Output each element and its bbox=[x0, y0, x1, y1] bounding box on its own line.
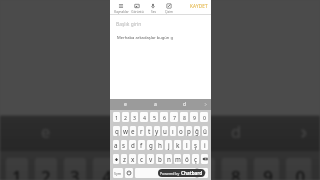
staticText: 7 bbox=[199, 164, 209, 180]
button[interactable]: e bbox=[130, 126, 136, 136]
button[interactable]: Shift bbox=[113, 154, 119, 164]
button[interactable]: ü bbox=[202, 126, 208, 136]
button[interactable]: o bbox=[178, 126, 184, 136]
button[interactable]: a bbox=[113, 140, 119, 150]
button[interactable]: Çizim bbox=[161, 0, 177, 15]
button[interactable]: q bbox=[113, 126, 120, 136]
button[interactable]: 7 bbox=[170, 112, 178, 122]
button[interactable]: s bbox=[121, 140, 127, 150]
button[interactable]: e bbox=[0, 116, 93, 151]
staticText: 5 bbox=[153, 114, 156, 121]
button[interactable]: ç bbox=[192, 154, 199, 164]
button[interactable]: 1 bbox=[6, 158, 28, 180]
button[interactable]: f bbox=[138, 140, 145, 150]
button[interactable]: Sym bbox=[113, 168, 123, 178]
button[interactable]: p bbox=[186, 126, 192, 136]
staticText: 6 bbox=[167, 164, 176, 180]
button[interactable]: 2 bbox=[35, 158, 57, 180]
button[interactable]: m bbox=[174, 154, 181, 164]
button[interactable]: 8 bbox=[221, 158, 247, 180]
button[interactable]: 8 bbox=[180, 112, 188, 122]
button[interactable]: y bbox=[154, 126, 160, 136]
staticText: d bbox=[183, 101, 187, 108]
button[interactable]: Enter bbox=[198, 168, 208, 178]
staticText: 1 bbox=[12, 164, 22, 180]
button[interactable]: 1 bbox=[113, 112, 120, 122]
button[interactable]: More suggestions bbox=[286, 116, 320, 151]
button[interactable]: d bbox=[170, 99, 200, 110]
staticText: e bbox=[124, 101, 127, 108]
staticText: b bbox=[158, 155, 162, 163]
button[interactable]: 0 bbox=[200, 112, 208, 122]
button[interactable]: h bbox=[156, 140, 163, 150]
button[interactable]: j bbox=[165, 140, 172, 150]
staticText: 7 bbox=[173, 114, 176, 121]
button[interactable]: Kaynaklar bbox=[113, 0, 129, 15]
button[interactable]: i bbox=[201, 140, 208, 150]
button[interactable]: 5 bbox=[125, 158, 151, 180]
staticText: t bbox=[148, 127, 151, 135]
staticText: h bbox=[158, 141, 162, 149]
button[interactable]: a bbox=[93, 116, 189, 151]
button[interactable]: 0 bbox=[286, 158, 312, 180]
button[interactable]: r bbox=[138, 126, 144, 136]
button[interactable]: u bbox=[162, 126, 168, 136]
button[interactable]: v bbox=[147, 154, 154, 164]
button[interactable]: 9 bbox=[254, 158, 279, 180]
button[interactable]: ö bbox=[183, 154, 190, 164]
staticText: u bbox=[163, 127, 167, 135]
staticText: v bbox=[149, 155, 153, 163]
button[interactable]: 4 bbox=[140, 112, 148, 122]
button[interactable]: Ses bbox=[145, 0, 161, 15]
button[interactable]: c bbox=[138, 154, 145, 164]
button[interactable]: Emoji bbox=[125, 168, 133, 178]
staticText: x bbox=[131, 155, 135, 163]
staticText: a bbox=[114, 141, 118, 149]
staticText: Chatbard bbox=[181, 170, 203, 176]
button[interactable]: More suggestions bbox=[200, 99, 211, 110]
button[interactable]: KAYDET bbox=[184, 0, 211, 12]
button[interactable]: n bbox=[165, 154, 172, 164]
button[interactable]: Backspace bbox=[201, 154, 208, 164]
button[interactable]: ı bbox=[170, 126, 176, 136]
button[interactable]: 2 bbox=[122, 112, 129, 122]
staticText: a bbox=[138, 122, 147, 145]
button[interactable]: Görüntü bbox=[129, 0, 145, 15]
button[interactable]: a bbox=[140, 99, 170, 110]
button[interactable]: 7 bbox=[189, 158, 215, 180]
staticText: Çizim bbox=[165, 10, 173, 14]
button[interactable]: 3 bbox=[131, 112, 138, 122]
staticText: 2 bbox=[124, 114, 127, 121]
button[interactable]: 3 bbox=[64, 158, 86, 180]
button[interactable]: l bbox=[183, 140, 190, 150]
button[interactable]: d bbox=[129, 140, 136, 150]
button[interactable]: t bbox=[146, 126, 152, 136]
staticText: Sym bbox=[114, 171, 122, 176]
button[interactable]: 6 bbox=[157, 158, 183, 180]
staticText: 6 bbox=[163, 114, 166, 121]
button[interactable]: 6 bbox=[160, 112, 168, 122]
button[interactable]: x bbox=[129, 154, 136, 164]
staticText: g bbox=[149, 141, 153, 149]
button[interactable]: g bbox=[147, 140, 154, 150]
staticText: d bbox=[231, 122, 244, 145]
staticText: c bbox=[140, 155, 144, 163]
button[interactable]: Space bbox=[135, 168, 196, 178]
staticText: m bbox=[175, 155, 181, 163]
button[interactable]: ğ bbox=[194, 126, 200, 136]
button[interactable]: z bbox=[121, 154, 127, 164]
staticText: ü bbox=[203, 127, 207, 135]
staticText: q bbox=[115, 127, 119, 135]
button[interactable]: 4 bbox=[93, 158, 118, 180]
button[interactable]: b bbox=[156, 154, 163, 164]
button[interactable]: e bbox=[110, 99, 140, 110]
button[interactable]: w bbox=[122, 126, 128, 136]
staticText: 3 bbox=[70, 164, 80, 180]
staticText: Kaynaklar bbox=[114, 10, 129, 14]
button[interactable]: k bbox=[174, 140, 181, 150]
staticText: y bbox=[155, 127, 159, 135]
button[interactable]: 5 bbox=[150, 112, 158, 122]
button[interactable]: 9 bbox=[190, 112, 198, 122]
button[interactable]: ş bbox=[192, 140, 199, 150]
button[interactable]: d bbox=[189, 116, 286, 151]
